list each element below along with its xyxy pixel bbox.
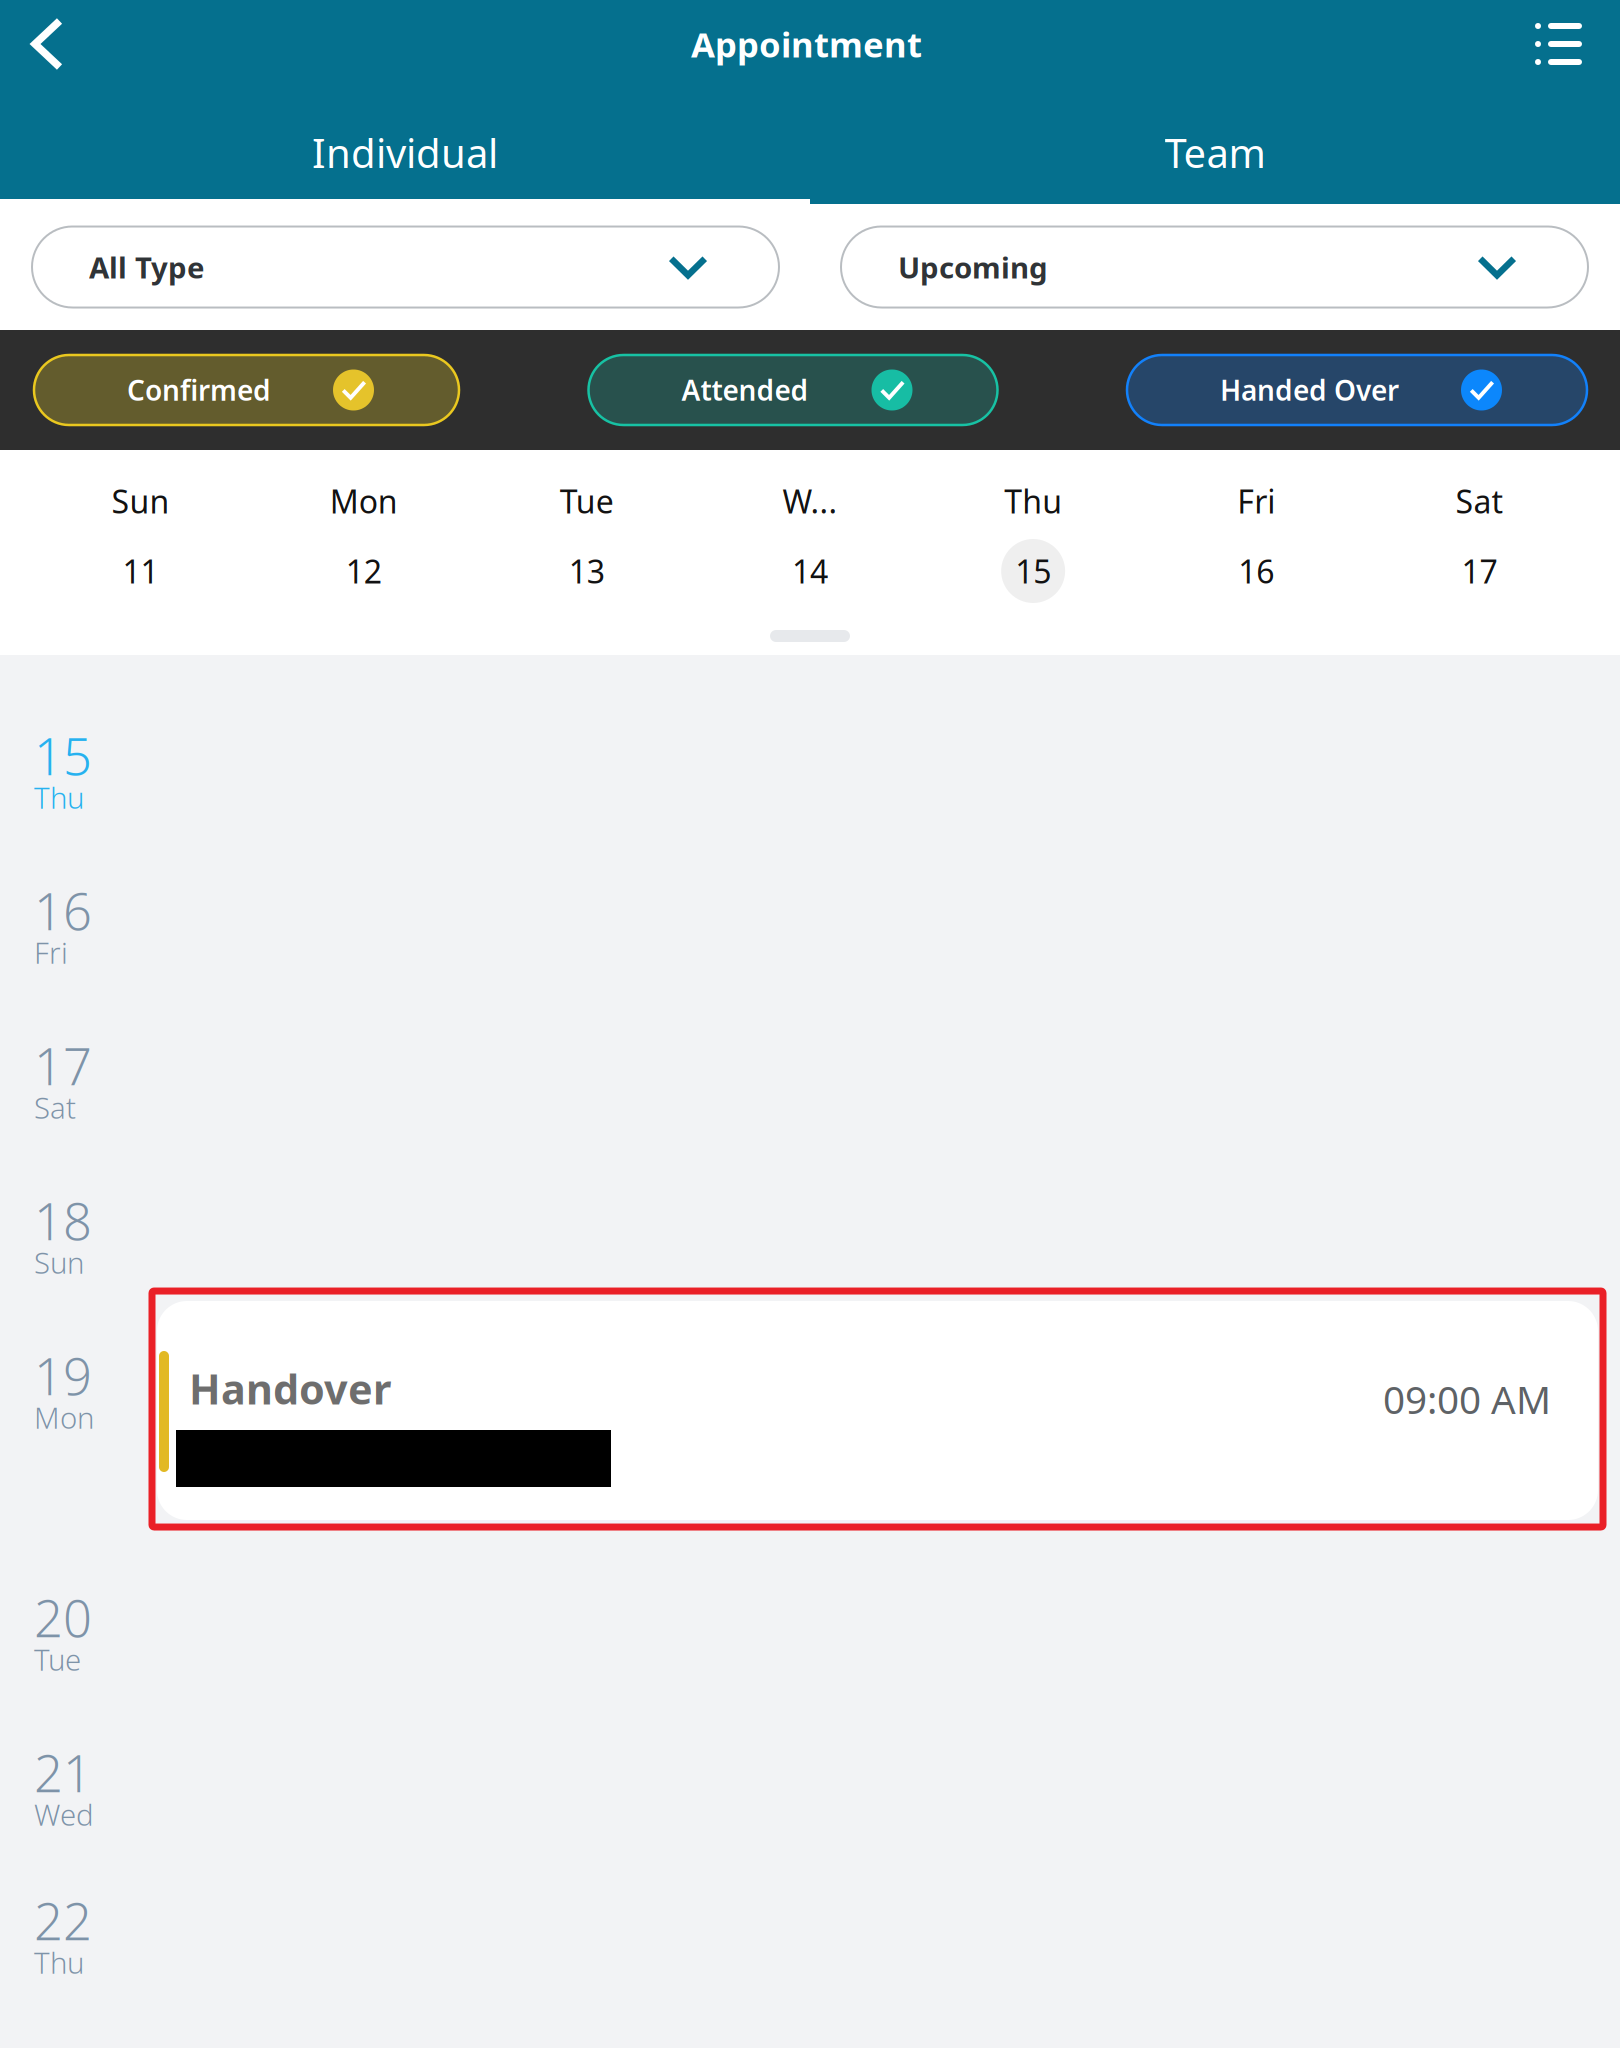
staticText: 22	[34, 1887, 92, 1954]
button[interactable]: 16	[0, 877, 1620, 1032]
button[interactable]: 22	[0, 1887, 1620, 2042]
staticText: Sat	[1455, 480, 1503, 522]
button[interactable]: 19	[0, 1342, 1620, 1497]
staticText: Mon	[330, 480, 398, 522]
staticText: 20	[34, 1584, 92, 1651]
button[interactable]: Team	[810, 88, 1620, 204]
button[interactable]: 15	[0, 722, 1620, 877]
button[interactable]: 20	[0, 1584, 1620, 1739]
button[interactable]: Sat	[1368, 485, 1591, 603]
button[interactable]: Handed Over	[1127, 355, 1587, 425]
staticText: Upcoming	[898, 247, 1048, 286]
staticText: Thu	[34, 778, 84, 817]
staticText: Sun	[34, 1243, 84, 1282]
staticText: Tue	[560, 480, 614, 522]
staticText: 12	[346, 550, 382, 592]
button[interactable]: W...	[698, 485, 921, 603]
staticText: Thu	[34, 1943, 84, 1982]
button[interactable]: Thu	[922, 485, 1145, 603]
staticText: Individual	[312, 126, 498, 179]
staticText: 14	[792, 550, 828, 592]
staticText: 16	[1238, 550, 1274, 592]
staticText: All Type	[89, 247, 205, 286]
staticText: Tue	[34, 1640, 81, 1679]
staticText: Handover	[189, 1361, 391, 1416]
staticText: Team	[1164, 126, 1265, 179]
staticText: 17	[34, 1032, 92, 1099]
button[interactable]: All Type	[32, 226, 779, 307]
staticText: Thu	[1004, 480, 1062, 522]
staticText: 16	[34, 877, 92, 944]
button[interactable]: Upcoming	[841, 226, 1588, 307]
button[interactable]: Attended	[588, 355, 997, 425]
button[interactable]: Fri	[1145, 485, 1368, 603]
staticText: Wed	[34, 1795, 94, 1834]
staticText: Fri	[34, 933, 68, 972]
button[interactable]: Tue	[475, 485, 698, 603]
button[interactable]: Individual	[0, 88, 810, 204]
button[interactable]: Confirmed	[34, 355, 459, 425]
staticText: 18	[34, 1187, 92, 1254]
staticText: 17	[1461, 550, 1497, 592]
button[interactable]: Mon	[252, 485, 475, 603]
button[interactable]: 18	[0, 1187, 1620, 1342]
staticText: Sun	[112, 480, 170, 522]
staticText: Fri	[1237, 480, 1275, 522]
staticText: 09:00 AM	[1383, 1373, 1551, 1425]
button[interactable]: Back	[0, 0, 131, 88]
button[interactable]: 17	[0, 1032, 1620, 1187]
button[interactable]: Menu	[1482, 0, 1620, 88]
button[interactable]: 21	[0, 1739, 1620, 1887]
button[interactable]: Sun	[29, 485, 252, 603]
staticText: Appointment	[691, 21, 922, 67]
staticText: W...	[782, 480, 837, 522]
staticText: 13	[569, 550, 605, 592]
staticText: 19	[34, 1342, 92, 1409]
staticText: 21	[34, 1739, 92, 1806]
staticText: 15	[34, 722, 92, 789]
staticText: Confirmed	[127, 371, 271, 409]
staticText: Mon	[34, 1398, 94, 1437]
staticText: Sat	[34, 1088, 76, 1127]
staticText: Attended	[681, 371, 808, 409]
button[interactable]: Handover	[152, 1291, 1603, 1527]
staticText: Handed Over	[1220, 371, 1399, 409]
staticText: 15	[1015, 550, 1051, 592]
staticText: 11	[123, 550, 159, 592]
